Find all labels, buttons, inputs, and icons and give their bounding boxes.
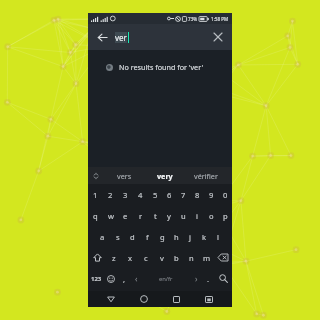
button[interactable]: r — [133, 205, 148, 226]
button[interactable]: a — [95, 226, 110, 247]
button[interactable]: Search — [214, 268, 232, 289]
staticText: v — [160, 253, 164, 263]
button[interactable]: p — [218, 205, 232, 226]
button[interactable]: q — [88, 205, 103, 226]
button[interactable]: 3 — [118, 184, 133, 205]
button[interactable]: Previous language — [130, 268, 142, 289]
button[interactable]: vérifier — [185, 167, 226, 184]
staticText: 1 — [93, 190, 98, 200]
button[interactable]: l — [211, 226, 225, 247]
staticText: z — [112, 253, 116, 263]
button[interactable]: n — [184, 247, 199, 268]
button[interactable]: Clear search — [210, 29, 226, 45]
button[interactable]: t — [148, 205, 162, 226]
staticText: 9 — [209, 190, 214, 200]
button[interactable]: m — [199, 247, 214, 268]
staticText: j — [189, 232, 191, 242]
staticText: No results found for 'ver' — [119, 62, 204, 72]
button[interactable]: Home — [134, 291, 154, 307]
staticText: vers — [117, 171, 132, 181]
button[interactable]: u — [176, 205, 190, 226]
button[interactable]: en/fr — [142, 268, 190, 289]
button[interactable]: Back — [94, 29, 110, 45]
staticText: ‹ — [135, 273, 138, 284]
staticText: k — [202, 232, 207, 242]
button[interactable]: g — [155, 226, 169, 247]
staticText: m — [203, 253, 211, 263]
staticText: r — [139, 211, 143, 221]
button[interactable]: 0 — [218, 184, 232, 205]
button[interactable]: o — [204, 205, 218, 226]
staticText: 123 — [91, 275, 102, 283]
button[interactable]: 123 — [88, 268, 104, 289]
button[interactable]: , — [118, 268, 130, 289]
button[interactable]: f — [140, 226, 155, 247]
button[interactable]: s — [110, 226, 125, 247]
button[interactable]: Back — [101, 291, 121, 307]
staticText: x — [128, 253, 133, 263]
button[interactable]: 1 — [88, 184, 103, 205]
staticText: p — [223, 211, 228, 221]
staticText: en/fr — [159, 275, 173, 283]
button[interactable]: b — [169, 247, 184, 268]
staticText: f — [146, 232, 149, 242]
staticText: , — [123, 274, 126, 284]
staticText: 3 — [123, 190, 128, 200]
button[interactable]: v — [154, 247, 169, 268]
button[interactable]: w — [103, 205, 118, 226]
button[interactable]: 9 — [204, 184, 218, 205]
button[interactable]: j — [183, 226, 197, 247]
staticText: vérifier — [194, 171, 218, 181]
staticText: 73% — [188, 16, 198, 22]
button[interactable]: i — [190, 205, 204, 226]
button[interactable]: Recent apps — [166, 291, 186, 307]
staticText: 8 — [195, 190, 200, 200]
staticText: i — [196, 211, 198, 221]
button[interactable]: Expand suggestions — [88, 167, 104, 184]
button[interactable]: 2 — [103, 184, 118, 205]
button[interactable]: h — [169, 226, 183, 247]
button[interactable]: Next language — [190, 268, 202, 289]
staticText: o — [209, 211, 214, 221]
staticText: h — [174, 232, 179, 242]
button[interactable]: 7 — [176, 184, 190, 205]
staticText: very — [157, 171, 173, 181]
staticText: 5 — [153, 190, 158, 200]
button[interactable]: Emoji — [104, 268, 118, 289]
staticText: 4 — [138, 190, 143, 200]
button[interactable]: 6 — [162, 184, 176, 205]
staticText: a — [100, 232, 105, 242]
button[interactable]: d — [125, 226, 140, 247]
staticText: b — [174, 253, 179, 263]
button[interactable]: Screenshot — [199, 291, 219, 307]
staticText: u — [181, 211, 186, 221]
staticText: y — [167, 211, 171, 221]
button[interactable]: vers — [104, 167, 144, 184]
button[interactable]: z — [106, 247, 122, 268]
button[interactable]: Backspace — [214, 247, 232, 268]
staticText: q — [93, 211, 98, 221]
button[interactable]: x — [122, 247, 138, 268]
button[interactable]: 4 — [133, 184, 148, 205]
button[interactable]: 8 — [190, 184, 204, 205]
button[interactable]: 5 — [148, 184, 162, 205]
staticText: 1:58 PM — [211, 16, 229, 22]
button[interactable]: y — [162, 205, 176, 226]
staticText: 0 — [223, 190, 228, 200]
button[interactable]: Shift — [88, 247, 106, 268]
staticText: › — [195, 273, 198, 284]
staticText: l — [217, 232, 219, 242]
staticText: 6 — [167, 190, 172, 200]
button[interactable]: . — [202, 268, 214, 289]
button[interactable]: c — [138, 247, 154, 268]
staticText: 2 — [108, 190, 113, 200]
staticText: s — [116, 232, 120, 242]
staticText: w — [108, 211, 114, 221]
button[interactable]: k — [197, 226, 211, 247]
button[interactable]: very — [144, 167, 185, 184]
staticText: e — [123, 211, 128, 221]
staticText: t — [154, 211, 157, 221]
staticText: . — [207, 274, 210, 284]
button[interactable]: e — [118, 205, 133, 226]
staticText: 7 — [181, 190, 186, 200]
